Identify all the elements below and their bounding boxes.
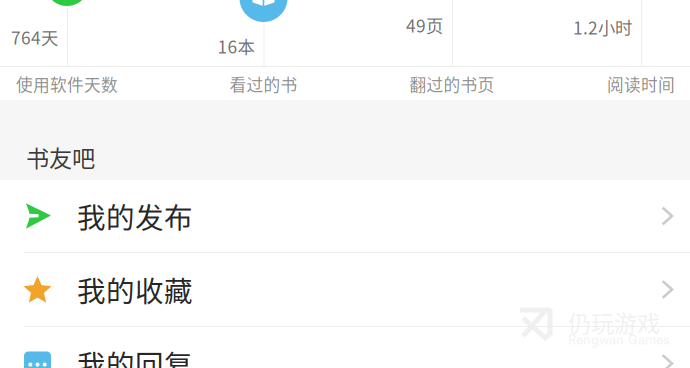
staticText: 阅读时间 (607, 72, 675, 96)
button[interactable]: 我的收藏 (0, 253, 690, 326)
staticText: 书友吧 (26, 140, 95, 174)
staticText: 看过的书 (229, 72, 297, 96)
staticText: 我的回复 (77, 343, 193, 368)
staticText: Rengwan Games (568, 332, 670, 347)
staticText: 我的发布 (77, 195, 193, 237)
button[interactable]: 我的发布 (0, 180, 690, 252)
staticText: 使用软件天数 (16, 72, 118, 96)
staticText: 764天 (11, 24, 58, 50)
button[interactable]: 我的回复 (0, 327, 690, 368)
staticText: 49页 (406, 12, 443, 38)
staticText: 16本 (217, 33, 254, 59)
staticText: 仍玩游戏 (568, 305, 660, 339)
staticText: 1.2小时 (573, 14, 632, 40)
staticText: 翻过的书页 (409, 72, 494, 96)
staticText: 我的收藏 (77, 269, 193, 310)
